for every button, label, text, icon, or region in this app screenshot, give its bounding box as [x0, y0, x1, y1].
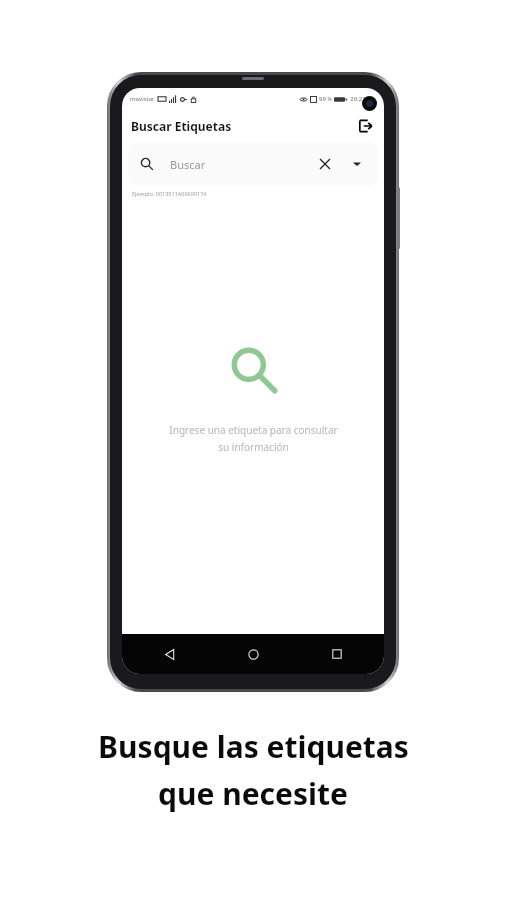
- button[interactable]: Atrás: [156, 641, 182, 667]
- staticText: Ejemplo: 0013511A00699174: [132, 190, 384, 197]
- button[interactable]: Inicio: [240, 641, 266, 667]
- staticText: movistar: [130, 95, 155, 103]
- staticText: 99: [319, 95, 326, 103]
- button[interactable]: Opciones: [348, 155, 366, 173]
- staticText: Ingrese una etiqueta para consultar: [169, 423, 338, 437]
- staticText: Buscar: [170, 157, 316, 172]
- button[interactable]: Limpiar: [316, 155, 334, 173]
- staticText: %: [327, 96, 332, 103]
- staticText: Busque las etiquetas: [98, 726, 409, 767]
- button[interactable]: Recientes: [324, 641, 350, 667]
- staticText: que necesite: [158, 773, 348, 814]
- button[interactable]: Cerrar sesión: [356, 116, 376, 136]
- staticText: Buscar Etiquetas: [131, 118, 232, 134]
- staticText: 20:22: [350, 95, 366, 103]
- button[interactable]: Buscar: [128, 142, 378, 186]
- staticText: su información: [218, 440, 289, 454]
